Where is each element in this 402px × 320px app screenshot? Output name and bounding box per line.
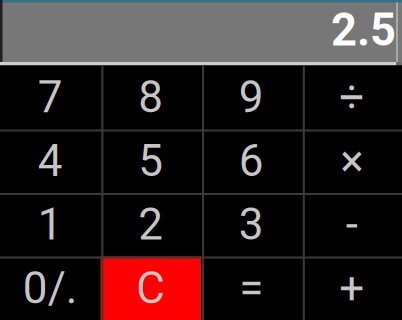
staticText: + (339, 262, 364, 314)
staticText: C (136, 262, 165, 314)
staticText: 2 (138, 199, 163, 250)
button[interactable]: C (100, 256, 201, 320)
staticText: 0/. (23, 262, 78, 314)
staticText: 9 (239, 71, 264, 123)
staticText: = (239, 262, 263, 314)
button[interactable]: 8 (100, 65, 201, 129)
staticText: 3 (239, 199, 264, 250)
button[interactable]: + (301, 256, 402, 320)
button[interactable]: = (201, 256, 301, 320)
staticText: 7 (38, 71, 63, 123)
button[interactable]: 2 (100, 193, 201, 256)
button[interactable]: 6 (201, 129, 301, 193)
button[interactable]: × (301, 129, 402, 193)
button[interactable]: 0/. (0, 256, 100, 320)
button[interactable]: 1 (0, 193, 100, 256)
staticText: 1 (38, 199, 63, 250)
button[interactable]: 7 (0, 65, 100, 129)
button[interactable]: - (301, 193, 402, 256)
button[interactable]: ÷ (301, 65, 402, 129)
staticText: 4 (38, 135, 63, 187)
staticText: 8 (138, 71, 163, 123)
staticText: 6 (239, 135, 264, 187)
button[interactable]: 4 (0, 129, 100, 193)
staticText: 2.5 (331, 3, 396, 56)
staticText: × (340, 135, 363, 187)
staticText: 5 (138, 135, 163, 187)
button[interactable]: 5 (100, 129, 201, 193)
button[interactable]: 3 (201, 193, 301, 256)
staticText: - (346, 199, 358, 250)
button[interactable]: 9 (201, 65, 301, 129)
staticText: ÷ (339, 71, 364, 123)
